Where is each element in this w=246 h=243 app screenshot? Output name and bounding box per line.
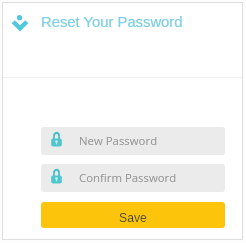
staticText: New Password xyxy=(79,133,158,149)
other: Password xyxy=(51,169,62,184)
button[interactable]: Save xyxy=(41,202,225,228)
staticText: Confirm Password xyxy=(79,170,177,186)
button[interactable]: Password xyxy=(41,127,225,155)
staticText: Save xyxy=(119,211,147,225)
button[interactable]: Password xyxy=(41,164,225,192)
staticText: Reset Your Password xyxy=(41,14,183,31)
other: User xyxy=(13,15,27,31)
other: Password xyxy=(51,132,62,147)
